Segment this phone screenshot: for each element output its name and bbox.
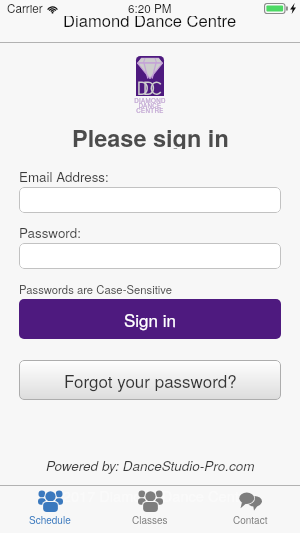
staticText: Diamond Dance Centre (63, 8, 237, 32)
button[interactable]: Contact (200, 486, 300, 533)
staticText: 6:20 PM (128, 0, 172, 16)
staticText: Contact (233, 513, 268, 527)
button[interactable] (19, 243, 281, 269)
staticText: Powered by: DanceStudio-Pro.com (46, 456, 255, 474)
button[interactable]: Classes (100, 486, 200, 533)
staticText: Carrier (7, 0, 43, 16)
staticText: Password: (19, 223, 81, 242)
staticText: Classes (132, 513, 168, 527)
button[interactable]: Forgot your password? (19, 360, 281, 400)
button[interactable] (19, 187, 281, 213)
staticText: Passwords are Case-Sensitive (19, 281, 173, 297)
staticText: Email Address: (19, 167, 109, 186)
staticText: Sign in (124, 307, 176, 331)
staticText: DIAMOND DANCE CENTRE (134, 96, 166, 114)
staticText: Forgot your password? (64, 368, 237, 392)
staticText: Please sign in (72, 121, 229, 149)
staticText: Schedule (29, 513, 71, 527)
button[interactable]: Sign in (19, 299, 281, 339)
staticText: © 2017 Diamond Dance Centre (48, 485, 252, 503)
button[interactable]: Schedule (0, 486, 100, 533)
